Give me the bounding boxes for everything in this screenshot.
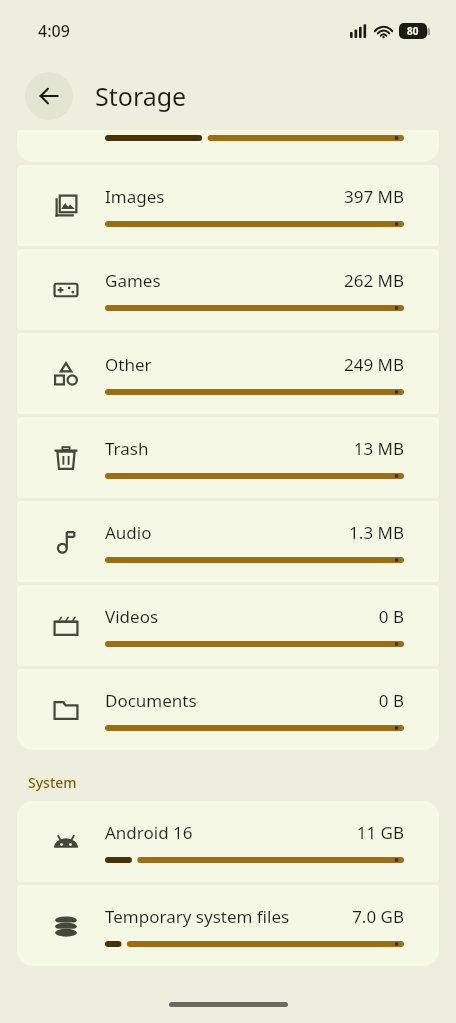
button[interactable]: Android 16 xyxy=(17,801,439,882)
button[interactable]: Documents xyxy=(17,669,439,750)
staticText: Other xyxy=(105,353,343,376)
staticText: 7.0 GB xyxy=(352,905,404,928)
staticText: 0 B xyxy=(378,689,404,712)
staticText: Temporary system files xyxy=(105,905,352,928)
staticText: Videos xyxy=(105,605,378,628)
staticText: Trash xyxy=(105,437,353,460)
staticText: 11 GB xyxy=(356,821,404,844)
button[interactable]: Images xyxy=(17,165,439,246)
staticText: Android 16 xyxy=(105,821,356,844)
button[interactable]: Games xyxy=(17,249,439,330)
button[interactable]: Audio xyxy=(17,501,439,582)
staticText: 0 B xyxy=(378,605,404,628)
staticText: 13 MB xyxy=(353,437,404,460)
staticText: Storage xyxy=(95,79,187,113)
button[interactable]: Other xyxy=(17,333,439,414)
staticText: 80 xyxy=(407,24,419,38)
button[interactable]: Temporary system files xyxy=(17,885,439,966)
staticText: 4:09 xyxy=(38,20,70,42)
staticText: 1.3 MB xyxy=(349,521,404,544)
button[interactable]: Back xyxy=(25,72,73,120)
staticText: Images xyxy=(105,185,343,208)
staticText: Audio xyxy=(105,521,349,544)
button[interactable]: Trash xyxy=(17,417,439,498)
staticText: Documents xyxy=(105,689,378,712)
button[interactable]: Videos xyxy=(17,585,439,666)
staticText: 397 MB xyxy=(343,185,404,208)
staticText: Games xyxy=(105,269,343,292)
staticText: 262 MB xyxy=(343,269,404,292)
button[interactable] xyxy=(17,130,439,162)
staticText: 249 MB xyxy=(343,353,404,376)
staticText: System xyxy=(28,773,77,792)
